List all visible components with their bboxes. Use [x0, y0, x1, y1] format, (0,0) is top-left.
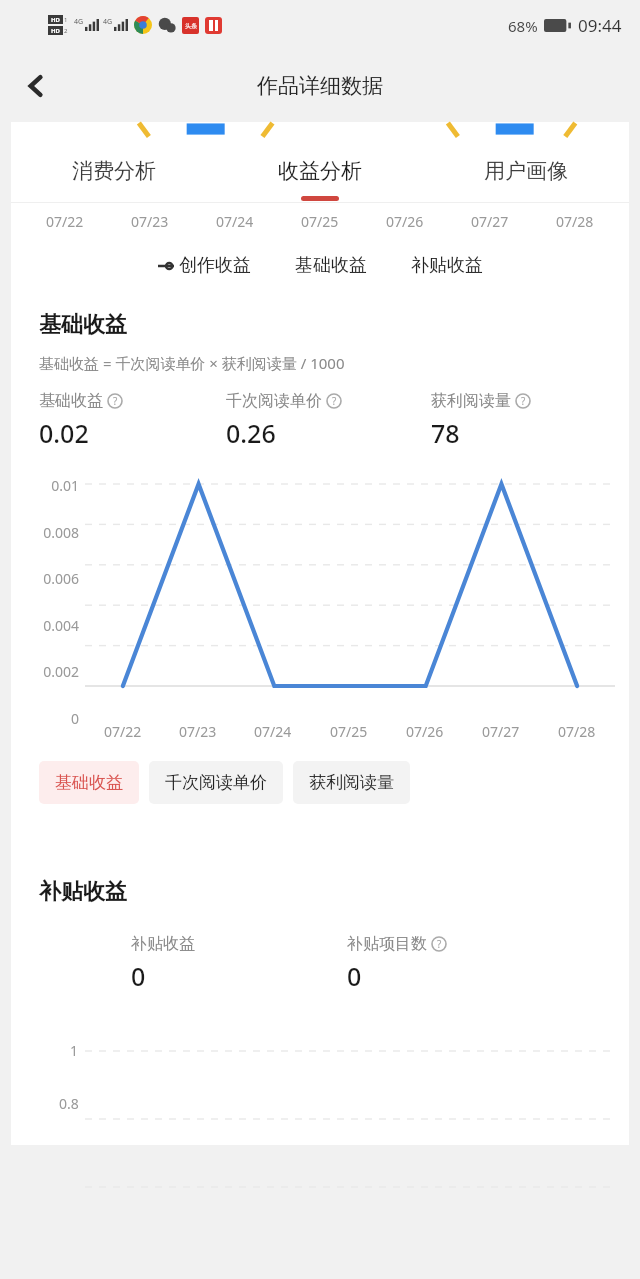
staticText: 1	[64, 16, 68, 24]
staticText: 基础收益	[55, 772, 123, 793]
staticText: 07/25	[301, 212, 339, 231]
staticText: 0.01	[51, 476, 79, 495]
button[interactable]: 用户画像	[423, 140, 629, 202]
staticText: 07/27	[471, 212, 509, 231]
staticText: 07/24	[216, 212, 254, 231]
staticText: 2	[64, 27, 68, 35]
staticText: 补贴项目数	[347, 934, 427, 954]
staticText: 78	[431, 416, 460, 450]
staticText: 0.002	[43, 662, 79, 681]
staticText: 获利阅读量	[431, 391, 511, 411]
staticText: 07/25	[330, 722, 368, 741]
staticText: 07/22	[104, 722, 142, 741]
staticText: 0.26	[226, 416, 276, 450]
button[interactable]: 说明	[431, 936, 447, 952]
staticText: 07/23	[131, 212, 169, 231]
staticText: 用户画像	[484, 158, 568, 184]
staticText: 07/27	[482, 722, 520, 741]
staticText: 作品详细数据	[257, 73, 383, 99]
button[interactable]: 说明	[326, 393, 342, 409]
staticText: 0.8	[59, 1094, 79, 1113]
button[interactable]: 说明	[515, 393, 531, 409]
staticText: 收益分析	[278, 158, 362, 184]
staticText: 头条	[185, 22, 197, 30]
staticText: 0.02	[39, 416, 89, 450]
staticText: HD	[51, 27, 60, 35]
staticText: ?	[332, 394, 337, 408]
staticText: 07/26	[386, 212, 424, 231]
staticText: 0.004	[43, 616, 79, 635]
staticText: 获利阅读量	[309, 772, 394, 793]
staticText: 07/24	[254, 722, 292, 741]
staticText: 千次阅读单价	[165, 772, 267, 793]
button[interactable]: 收益分析	[217, 140, 423, 202]
staticText: 补贴收益	[131, 934, 195, 954]
staticText: 基础收益 = 千次阅读单价 × 获利阅读量 / 1000	[39, 353, 345, 373]
staticText: 基础收益	[39, 311, 127, 339]
staticText: 创作收益	[179, 254, 251, 277]
staticText: 千次阅读单价	[226, 391, 322, 411]
staticText: 0.008	[43, 523, 79, 542]
staticText: 07/26	[406, 722, 444, 741]
staticText: 0	[347, 959, 362, 993]
button[interactable]: 说明	[107, 393, 123, 409]
staticText: 68%	[508, 16, 538, 36]
staticText: 补贴收益	[39, 878, 127, 906]
staticText: 0	[70, 709, 79, 728]
staticText: 07/23	[179, 722, 217, 741]
staticText: HD	[51, 16, 60, 24]
staticText: ?	[113, 394, 118, 408]
staticText: 09:44	[578, 14, 622, 37]
staticText: 07/28	[558, 722, 596, 741]
button[interactable]: 基础收益	[39, 761, 139, 804]
button[interactable]: 补贴收益	[411, 254, 483, 277]
button[interactable]: 消费分析	[11, 140, 217, 202]
staticText: 4G	[103, 17, 113, 27]
staticText: 07/28	[556, 212, 594, 231]
staticText: 0.006	[43, 569, 79, 588]
staticText: 基础收益	[39, 391, 103, 411]
staticText: ?	[521, 394, 526, 408]
staticText: ?	[437, 937, 442, 951]
staticText: 07/22	[46, 212, 84, 231]
staticText: 4G	[74, 17, 84, 27]
button[interactable]: 基础收益	[295, 254, 367, 277]
button[interactable]: 创作收益	[158, 254, 251, 277]
staticText: 0	[131, 959, 146, 993]
staticText: 1	[70, 1041, 79, 1060]
button[interactable]: 千次阅读单价	[149, 761, 283, 804]
button[interactable]: Back	[12, 62, 60, 110]
button[interactable]: 获利阅读量	[293, 761, 410, 804]
staticText: 消费分析	[72, 158, 156, 184]
